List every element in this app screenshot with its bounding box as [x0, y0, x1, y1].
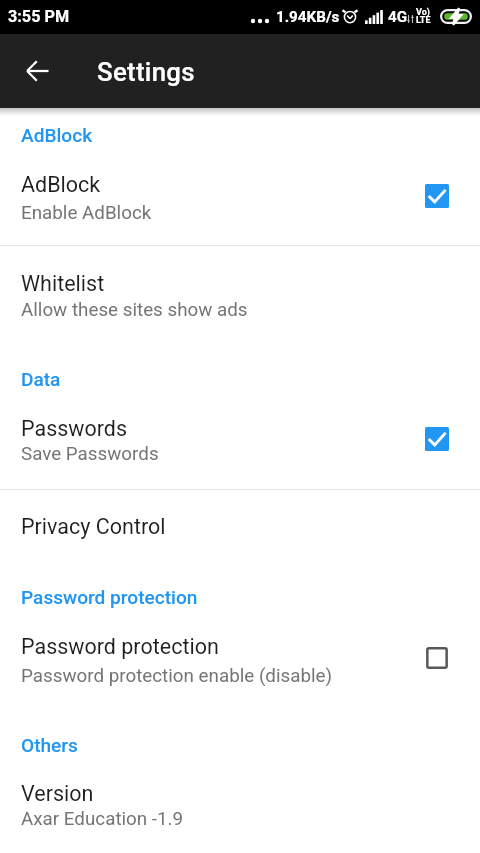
staticText: Vo) LTE: [416, 7, 431, 26]
staticText: 1.94KB/s: [276, 8, 340, 26]
staticText: Others: [21, 734, 78, 756]
staticText: 4G: [388, 8, 408, 26]
staticText: Password protection: [21, 634, 219, 659]
button[interactable]: [0, 489, 480, 559]
button[interactable]: Checked: [425, 184, 449, 208]
staticText: 3:55 PM: [8, 7, 70, 26]
button[interactable]: [0, 396, 480, 488]
staticText: Version: [21, 781, 94, 806]
staticText: Whitelist: [21, 271, 105, 296]
staticText: AdBlock: [21, 124, 93, 146]
staticText: Password protection: [21, 586, 198, 608]
staticText: Enable AdBlock: [21, 202, 152, 224]
button[interactable]: Checked: [425, 427, 449, 451]
button[interactable]: [0, 761, 480, 853]
staticText: Save Passwords: [21, 443, 159, 465]
staticText: AdBlock: [21, 172, 101, 197]
staticText: Axar Education -1.9: [21, 808, 184, 830]
button[interactable]: Unchecked: [425, 646, 449, 670]
staticText: Data: [21, 368, 61, 390]
button[interactable]: [0, 152, 480, 244]
staticText: Settings: [97, 57, 195, 87]
button[interactable]: [0, 245, 480, 337]
staticText: Passwords: [21, 416, 128, 441]
staticText: Privacy Control: [21, 514, 166, 539]
staticText: Password protection enable (disable): [21, 665, 333, 687]
button[interactable]: [0, 615, 480, 707]
button[interactable]: Back: [13, 47, 61, 95]
staticText: Allow these sites show ads: [21, 299, 248, 321]
